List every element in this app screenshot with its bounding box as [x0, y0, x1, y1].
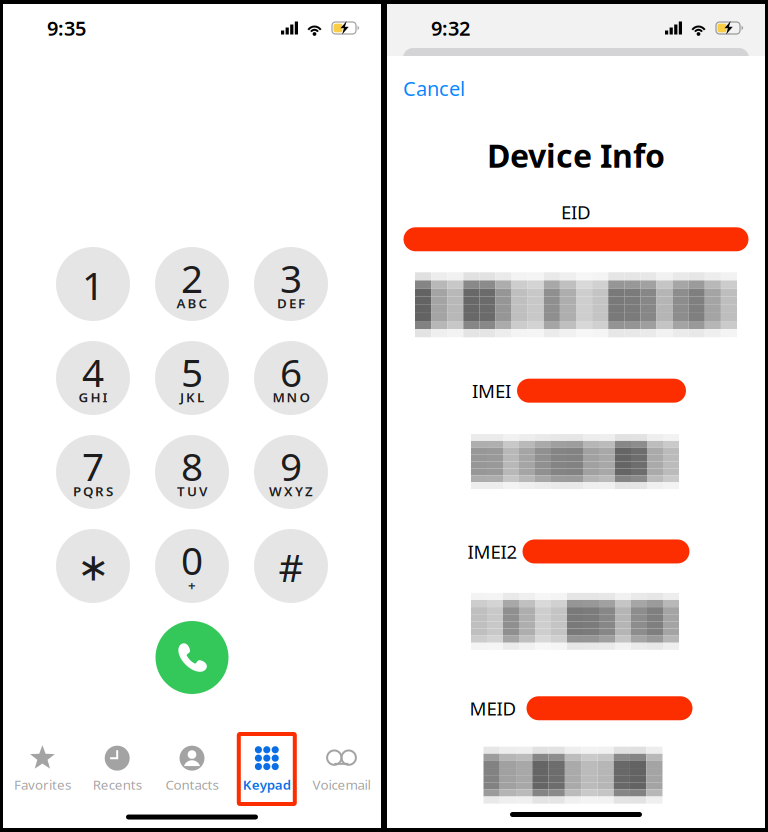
- staticText: 8: [181, 440, 203, 492]
- button[interactable]: 2: [155, 247, 229, 321]
- button[interactable]: 9: [254, 435, 328, 509]
- staticText: Voicemail: [313, 776, 371, 793]
- staticText: 0: [181, 534, 203, 586]
- button[interactable]: 7: [56, 435, 130, 509]
- staticText: Cancel: [403, 75, 465, 102]
- staticText: Contacts: [165, 776, 218, 793]
- staticText: 3: [280, 252, 302, 304]
- staticText: T U V: [177, 482, 207, 500]
- staticText: 9:32: [431, 15, 470, 41]
- staticText: J K L: [180, 388, 204, 406]
- staticText: Keypad: [243, 776, 291, 793]
- button[interactable]: Contacts: [155, 741, 229, 797]
- staticText: EID: [561, 199, 591, 224]
- staticText: A B C: [176, 294, 207, 312]
- staticText: P Q R S: [73, 482, 113, 500]
- button[interactable]: 3: [254, 247, 328, 321]
- staticText: 9: [280, 440, 302, 492]
- button[interactable]: Favorites: [5, 741, 80, 797]
- staticText: 4: [82, 346, 104, 398]
- staticText: ∗: [77, 545, 109, 589]
- button[interactable]: Keypad: [229, 741, 304, 797]
- staticText: MEID: [469, 696, 516, 721]
- button[interactable]: #: [254, 529, 328, 603]
- staticText: 7: [82, 440, 104, 492]
- button[interactable]: Voicemail: [304, 741, 379, 797]
- button[interactable]: 8: [155, 435, 229, 509]
- button[interactable]: 0: [155, 529, 229, 603]
- staticText: 2: [181, 252, 203, 304]
- staticText: 5: [181, 346, 203, 398]
- button[interactable]: 6: [254, 341, 328, 415]
- button[interactable]: Call: [155, 621, 228, 694]
- staticText: Favorites: [14, 776, 71, 793]
- button[interactable]: ∗: [56, 529, 130, 603]
- staticText: Recents: [93, 776, 142, 793]
- staticText: +: [188, 576, 196, 594]
- staticText: IMEI2: [467, 539, 517, 564]
- staticText: D E F: [277, 294, 305, 312]
- staticText: W X Y Z: [269, 482, 313, 500]
- button[interactable]: 1: [56, 247, 130, 321]
- button[interactable]: Recents: [80, 741, 155, 797]
- staticText: IMEI: [472, 378, 511, 403]
- staticText: M N O: [272, 388, 309, 406]
- staticText: Device Info: [487, 134, 665, 176]
- button[interactable]: Cancel: [401, 72, 467, 105]
- staticText: G H I: [78, 388, 107, 406]
- staticText: #: [278, 541, 303, 593]
- staticText: 9:35: [47, 15, 86, 41]
- staticText: 1: [82, 259, 104, 311]
- button[interactable]: 4: [56, 341, 130, 415]
- staticText: 6: [280, 346, 302, 398]
- button[interactable]: 5: [155, 341, 229, 415]
